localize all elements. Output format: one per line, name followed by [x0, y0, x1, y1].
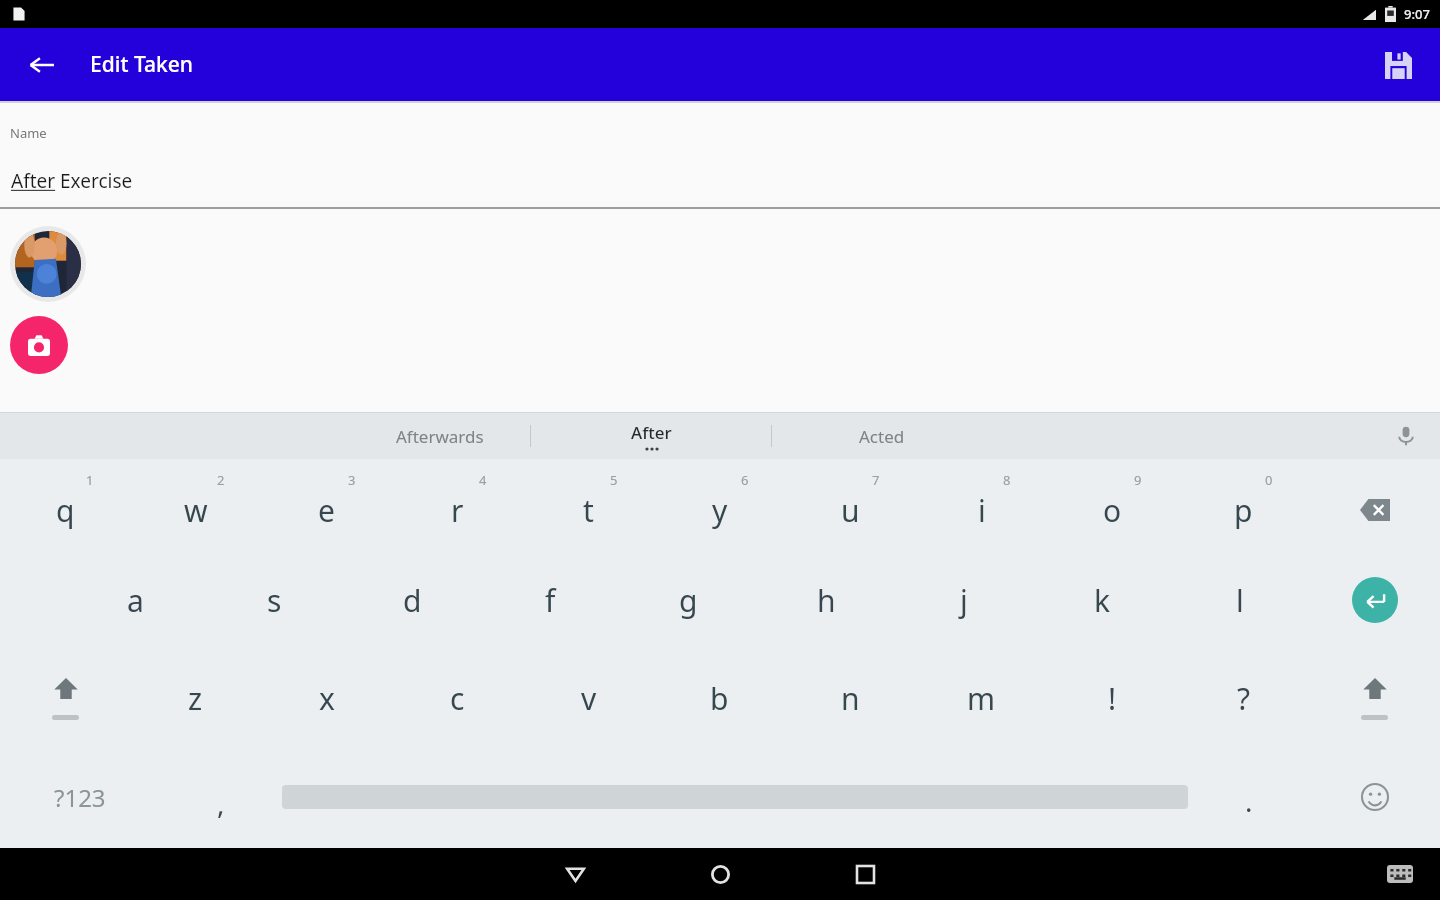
staticText: x — [319, 678, 335, 719]
staticText: w — [184, 490, 208, 531]
staticText: 9:07 — [1404, 5, 1430, 23]
staticText: 5 — [610, 471, 618, 489]
staticText: Name — [10, 124, 47, 142]
staticText: 0 — [1265, 471, 1273, 489]
staticText: l — [1236, 580, 1244, 621]
staticText: 4 — [479, 471, 487, 489]
staticText: 3 — [348, 471, 356, 489]
button[interactable]: b — [654, 649, 785, 747]
button[interactable]: Shift — [0, 649, 130, 747]
staticText: e — [318, 490, 335, 531]
button[interactable]: e — [261, 469, 392, 551]
button[interactable]: ? — [1178, 649, 1309, 747]
staticText: s — [267, 580, 282, 621]
button[interactable]: Take photo — [10, 316, 68, 374]
staticText: g — [679, 580, 698, 621]
button[interactable]: g — [619, 551, 757, 649]
button[interactable]: f — [481, 551, 619, 649]
staticText: 7 — [872, 471, 880, 489]
button[interactable]: After Exercise — [0, 168, 1440, 194]
button[interactable]: a — [66, 551, 205, 649]
staticText: t — [583, 490, 594, 531]
button[interactable]: Hide keyboard — [530, 848, 620, 900]
staticText: h — [817, 580, 836, 621]
staticText: f — [545, 580, 556, 621]
staticText: i — [978, 490, 986, 531]
staticText: Edit Taken — [90, 50, 193, 79]
staticText: j — [960, 580, 968, 621]
button[interactable]: Enter — [1309, 551, 1440, 649]
button[interactable]: Recent apps — [820, 848, 910, 900]
staticText: p — [1234, 490, 1253, 531]
button[interactable]: p — [1178, 469, 1309, 551]
staticText: v — [581, 678, 597, 719]
button[interactable]: After — [531, 413, 771, 459]
button[interactable]: . — [1188, 747, 1310, 847]
button[interactable]: z — [130, 649, 261, 747]
button[interactable]: s — [205, 551, 343, 649]
button[interactable]: Emoji — [1310, 747, 1440, 847]
staticText: After — [631, 421, 672, 444]
button[interactable]: ?123 — [0, 747, 160, 847]
button[interactable]: , — [160, 747, 282, 847]
staticText: 2 — [217, 471, 225, 489]
staticText: Acted — [859, 425, 905, 448]
button[interactable]: Shift — [1309, 649, 1440, 747]
staticText: c — [450, 678, 465, 719]
staticText: , — [217, 784, 225, 822]
button[interactable]: v — [523, 649, 654, 747]
button[interactable]: h — [757, 551, 895, 649]
staticText: y — [712, 490, 728, 531]
button[interactable]: Afterwards — [350, 413, 530, 459]
staticText: r — [451, 490, 464, 531]
button[interactable]: u — [785, 469, 916, 551]
button[interactable]: m — [916, 649, 1047, 747]
staticText: ? — [1237, 678, 1251, 719]
button[interactable]: i — [916, 469, 1047, 551]
button[interactable]: j — [895, 551, 1033, 649]
button[interactable]: c — [392, 649, 523, 747]
button[interactable]: Home — [675, 848, 765, 900]
staticText: . — [1245, 782, 1253, 820]
staticText: 8 — [1003, 471, 1011, 489]
staticText: b — [710, 678, 729, 719]
button[interactable]: ! — [1047, 649, 1178, 747]
button[interactable]: Voice input — [1386, 416, 1426, 456]
button[interactable]: Switch keyboard — [1378, 852, 1422, 896]
staticText: ! — [1108, 678, 1117, 719]
button[interactable]: o — [1047, 469, 1178, 551]
staticText: u — [841, 490, 860, 531]
staticText: 9 — [1134, 471, 1142, 489]
staticText: a — [127, 580, 144, 621]
button[interactable]: Save — [1370, 37, 1426, 93]
button[interactable]: Space — [282, 747, 1188, 847]
staticText: 6 — [741, 471, 749, 489]
button[interactable]: k — [1033, 551, 1171, 649]
button[interactable]: n — [785, 649, 916, 747]
staticText: q — [56, 490, 75, 531]
staticText: After Exercise — [11, 168, 133, 194]
button[interactable]: t — [523, 469, 654, 551]
staticText: n — [841, 678, 860, 719]
staticText: ?123 — [54, 781, 106, 814]
staticText: k — [1094, 580, 1111, 621]
button[interactable]: Photo — [10, 226, 86, 302]
button[interactable]: w — [130, 469, 261, 551]
button[interactable]: Backspace — [1309, 469, 1440, 551]
button[interactable]: l — [1171, 551, 1309, 649]
staticText: o — [1103, 490, 1122, 531]
button[interactable]: y — [654, 469, 785, 551]
button[interactable]: r — [392, 469, 523, 551]
staticText: m — [967, 678, 996, 719]
button[interactable]: q — [0, 469, 130, 551]
button[interactable]: d — [343, 551, 481, 649]
staticText: d — [403, 580, 422, 621]
staticText: 1 — [86, 471, 94, 489]
button[interactable]: Acted — [772, 413, 992, 459]
staticText: z — [188, 678, 203, 719]
button[interactable]: x — [261, 649, 392, 747]
staticText: Afterwards — [396, 425, 484, 448]
button[interactable]: Back — [14, 37, 70, 93]
